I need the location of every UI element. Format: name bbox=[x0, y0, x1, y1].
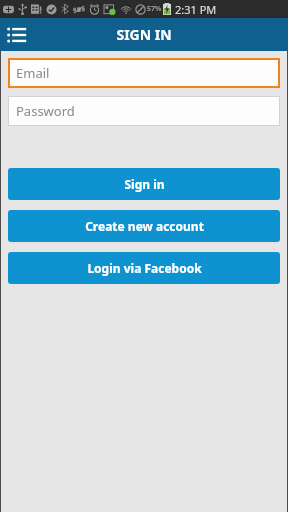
button[interactable]: Password bbox=[8, 96, 280, 126]
staticText: Sign in bbox=[124, 176, 165, 192]
staticText: Email bbox=[16, 64, 50, 82]
button[interactable]: Sign in bbox=[8, 168, 280, 200]
button[interactable]: Open navigation menu bbox=[0, 18, 33, 51]
staticText: Password bbox=[16, 102, 75, 120]
staticText: 57% bbox=[147, 4, 162, 14]
staticText: Login via Facebook bbox=[87, 260, 202, 276]
button[interactable]: Email bbox=[8, 58, 280, 88]
staticText: SIGN IN bbox=[116, 25, 172, 44]
staticText: Create new account bbox=[85, 218, 204, 234]
button[interactable]: Create new account bbox=[8, 210, 280, 242]
button[interactable]: Login via Facebook bbox=[8, 252, 280, 284]
staticText: 2:31 PM bbox=[175, 2, 217, 17]
